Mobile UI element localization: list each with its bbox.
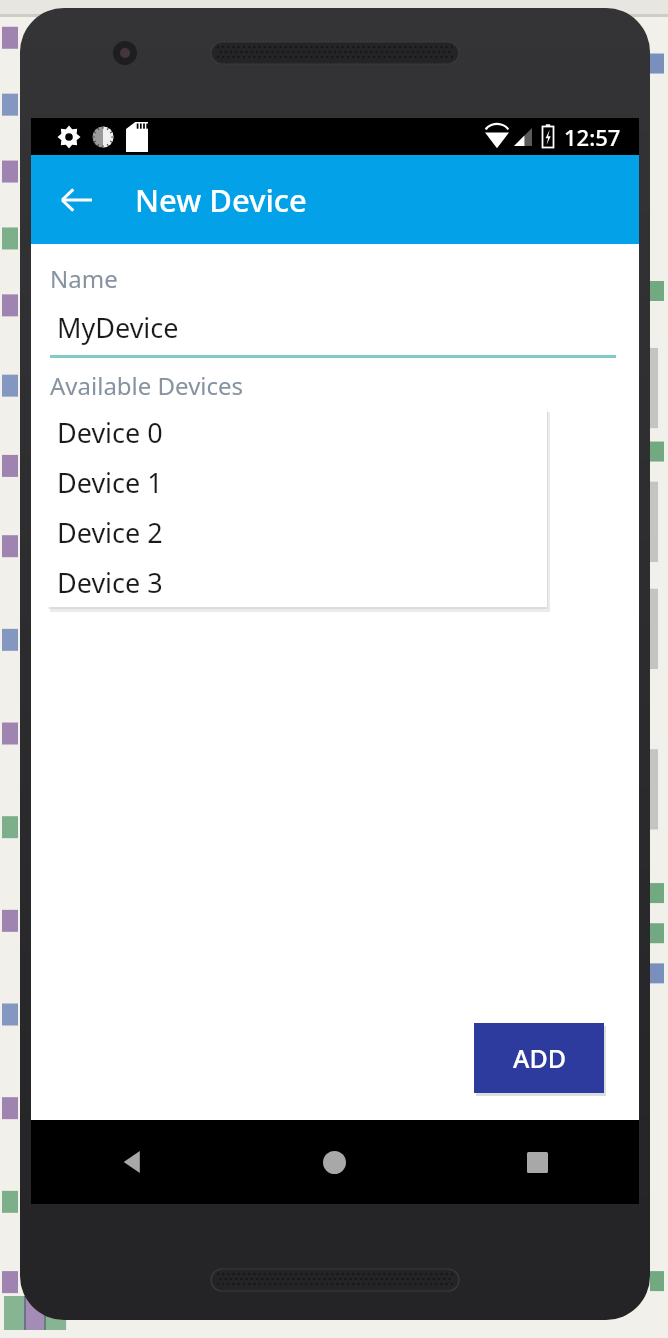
staticText: ADD (513, 1041, 566, 1075)
button[interactable]: MyDevice (50, 309, 616, 358)
staticText: Device 1 (57, 464, 163, 501)
button[interactable]: ADD (474, 1023, 604, 1093)
staticText: Device 2 (57, 514, 163, 551)
staticText: Name (50, 262, 118, 295)
button[interactable]: Device 3 (47, 557, 547, 607)
button[interactable]: Recent apps (436, 1120, 639, 1204)
button[interactable]: Device 2 (47, 507, 547, 557)
button[interactable]: Home (233, 1120, 436, 1204)
staticText: Device 3 (57, 564, 163, 601)
button[interactable]: Device 1 (47, 457, 547, 507)
staticText: Device 0 (57, 414, 163, 451)
staticText: MyDevice (57, 309, 179, 346)
staticText: 12:57 (564, 122, 621, 152)
staticText: Available Devices (50, 369, 244, 402)
button[interactable]: Back (51, 174, 103, 226)
staticText: New Device (135, 179, 307, 221)
button[interactable]: Device 0 (47, 407, 547, 457)
button[interactable]: Back (31, 1120, 233, 1204)
